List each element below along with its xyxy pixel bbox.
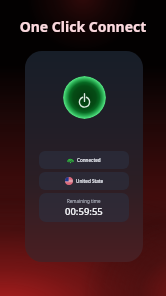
staticText: 00:59:55 bbox=[65, 205, 103, 218]
button[interactable]: Connected bbox=[39, 151, 129, 169]
button[interactable]: Remaining time bbox=[39, 193, 129, 222]
button[interactable]: United State bbox=[39, 172, 129, 190]
staticText: One Click Connect bbox=[0, 17, 166, 36]
staticText: United State bbox=[76, 178, 104, 184]
staticText: Connected bbox=[77, 157, 101, 163]
button[interactable]: Power on bbox=[63, 76, 106, 119]
staticText: Remaining time bbox=[67, 198, 101, 204]
